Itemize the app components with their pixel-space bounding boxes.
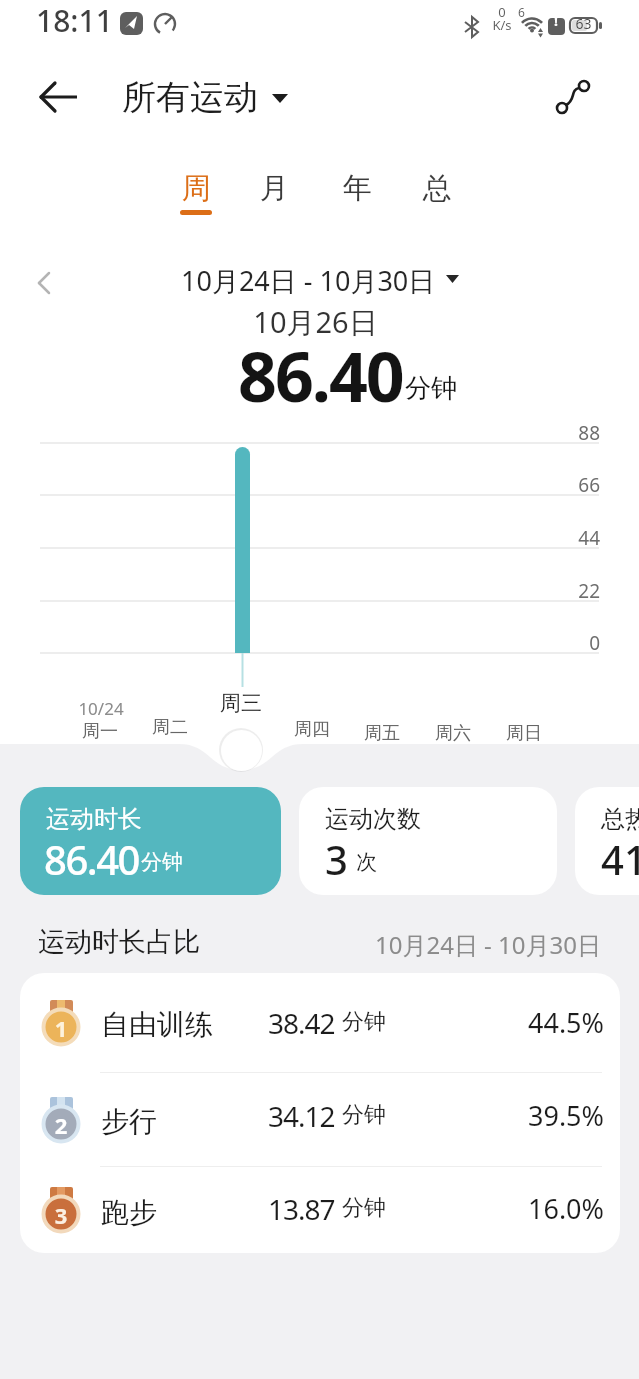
button[interactable]: 2	[20, 1073, 620, 1166]
staticText: 86.40	[44, 832, 139, 886]
staticText: 63	[570, 14, 597, 33]
staticText: 414	[601, 832, 639, 886]
staticText: 39.5%	[20, 1097, 604, 1134]
staticText: 运动次数	[325, 804, 421, 834]
staticText: 86.40	[238, 329, 403, 422]
button[interactable]: 总热量	[575, 787, 639, 895]
staticText: 自由训练	[101, 1007, 213, 1042]
staticText: 10月24日 - 10月30日	[181, 262, 436, 296]
button[interactable]: 总	[413, 170, 461, 220]
staticText: 3	[325, 832, 348, 886]
button[interactable]: 运动时长	[20, 787, 281, 895]
button[interactable]: 10月24日 - 10月30日	[0, 262, 639, 296]
staticText: 周四	[272, 718, 352, 741]
staticText: 66	[530, 472, 600, 498]
button[interactable]: 所有运动	[122, 76, 288, 119]
staticText: K/s	[489, 16, 515, 34]
staticText: 16.0%	[20, 1190, 604, 1227]
staticText: 运动时长	[46, 804, 142, 834]
button[interactable]	[34, 78, 82, 118]
staticText: 周日	[484, 722, 564, 745]
staticText: 分钟	[141, 849, 183, 875]
button[interactable]: 年	[333, 170, 381, 220]
staticText: 44	[530, 525, 600, 551]
staticText: 周一	[60, 720, 140, 743]
staticText: 3	[39, 1200, 83, 1230]
staticText: 10月26日	[0, 302, 635, 342]
button[interactable]: 1	[20, 973, 620, 1072]
button[interactable]	[552, 76, 596, 120]
staticText: 总	[423, 170, 452, 207]
staticText: 次	[356, 849, 377, 875]
staticText: 6	[518, 4, 525, 20]
button[interactable]: 周	[172, 170, 220, 220]
staticText: 22	[530, 578, 600, 604]
staticText: 34.12	[268, 1097, 335, 1135]
staticText: 分钟	[342, 1008, 386, 1036]
button[interactable]: 运动次数	[299, 787, 557, 895]
staticText: 88	[530, 420, 600, 446]
staticText: 44.5%	[20, 1004, 604, 1041]
button[interactable]: 月	[250, 170, 298, 220]
staticText: 运动时长占比	[38, 925, 200, 959]
staticText: 13.87	[268, 1190, 335, 1228]
staticText: 2	[39, 1110, 83, 1140]
staticText: 0	[530, 630, 600, 656]
staticText: 年	[343, 170, 372, 207]
staticText: 10月24日 - 10月30日	[0, 928, 601, 961]
staticText: 周	[182, 170, 211, 207]
staticText: 10/24	[61, 697, 141, 720]
staticText: 38.42	[268, 1004, 335, 1042]
staticText: 步行	[101, 1104, 157, 1139]
staticText: 周三	[201, 690, 281, 716]
staticText: 分钟	[342, 1101, 386, 1129]
staticText: 1	[39, 1013, 83, 1043]
staticText: 分钟	[342, 1194, 386, 1222]
staticText: 跑步	[101, 1195, 157, 1230]
staticText: 18:11	[36, 0, 113, 41]
staticText: 周五	[342, 722, 422, 745]
staticText: 月	[260, 170, 289, 207]
staticText: 所有运动	[122, 76, 258, 119]
staticText: 周二	[130, 716, 210, 739]
staticText: !	[548, 11, 564, 30]
staticText: 分钟	[405, 372, 457, 405]
staticText: 总热量	[601, 804, 639, 834]
staticText: 0	[489, 3, 515, 21]
button[interactable]: 3	[20, 1167, 620, 1253]
staticText: 周六	[413, 722, 493, 745]
